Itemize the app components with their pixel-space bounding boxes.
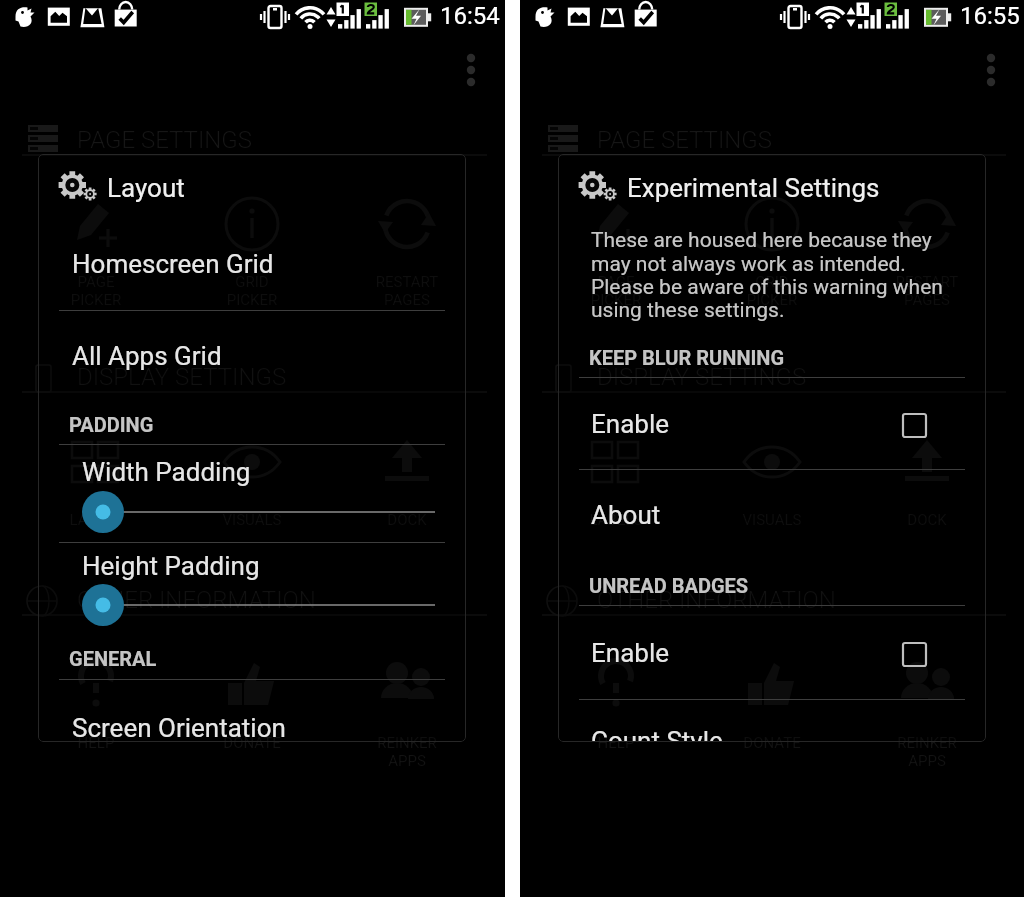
staticText: PICKER: [712, 291, 832, 309]
button[interactable]: Enable: [591, 638, 669, 668]
staticText: OTHER INFORMATION: [77, 586, 316, 614]
staticText: DONATE: [192, 734, 312, 752]
staticText: PAGE: [36, 273, 156, 291]
staticText: VISUALS: [192, 511, 312, 529]
button[interactable]: Screen Orientation: [72, 713, 286, 742]
staticText: Experimental Settings: [627, 173, 880, 203]
staticText: PAGE SETTINGS: [77, 126, 252, 154]
staticText: DONATE: [712, 734, 832, 752]
staticText: DISPLAY SETTINGS: [597, 363, 807, 391]
staticText: KEEP BLUR RUNNING: [589, 346, 785, 369]
staticText: LABELS: [36, 511, 156, 529]
staticText: DOCK: [867, 511, 987, 529]
staticText: These are housed here because they may n…: [591, 228, 943, 322]
staticText: HELP: [556, 734, 676, 752]
staticText: APPS: [867, 752, 987, 770]
staticText: REINKER: [347, 734, 467, 752]
button[interactable]: Height Padding: [82, 551, 260, 581]
button[interactable]: Width Padding: [82, 457, 251, 487]
staticText: OTHER INFORMATION: [597, 586, 836, 614]
staticText: RESTART: [347, 273, 467, 291]
staticText: PICKER: [36, 291, 156, 309]
staticText: LABELS: [556, 511, 676, 529]
staticText: 16:55: [960, 2, 1020, 30]
button[interactable]: Enable toggle: [902, 413, 927, 438]
staticText: PAGE: [556, 273, 676, 291]
staticText: Layout: [107, 173, 185, 203]
staticText: DOCK: [347, 511, 467, 529]
staticText: PICKER: [192, 291, 312, 309]
button[interactable]: Enable toggle: [902, 642, 927, 667]
staticText: REINKER: [867, 734, 987, 752]
button[interactable]: About: [591, 500, 661, 530]
staticText: RESTART: [867, 273, 987, 291]
staticText: PADDING: [69, 413, 154, 436]
button[interactable]: More options: [972, 48, 1012, 92]
button[interactable]: More options: [452, 48, 492, 92]
staticText: DISPLAY SETTINGS: [77, 363, 287, 391]
button[interactable]: Homescreen Grid: [72, 249, 274, 279]
staticText: GENERAL: [69, 647, 157, 670]
staticText: 16:54: [440, 2, 500, 30]
staticText: PAGES: [347, 291, 467, 309]
button[interactable]: All Apps Grid: [72, 341, 222, 371]
staticText: PICKER: [556, 291, 676, 309]
button[interactable]: Enable: [591, 409, 669, 439]
button[interactable]: Count Style: [591, 726, 723, 742]
staticText: PAGE SETTINGS: [597, 126, 772, 154]
staticText: UNREAD BADGES: [589, 574, 749, 597]
staticText: APPS: [347, 752, 467, 770]
staticText: PAGES: [867, 291, 987, 309]
staticText: HELP: [36, 734, 156, 752]
staticText: GRID: [712, 273, 832, 291]
